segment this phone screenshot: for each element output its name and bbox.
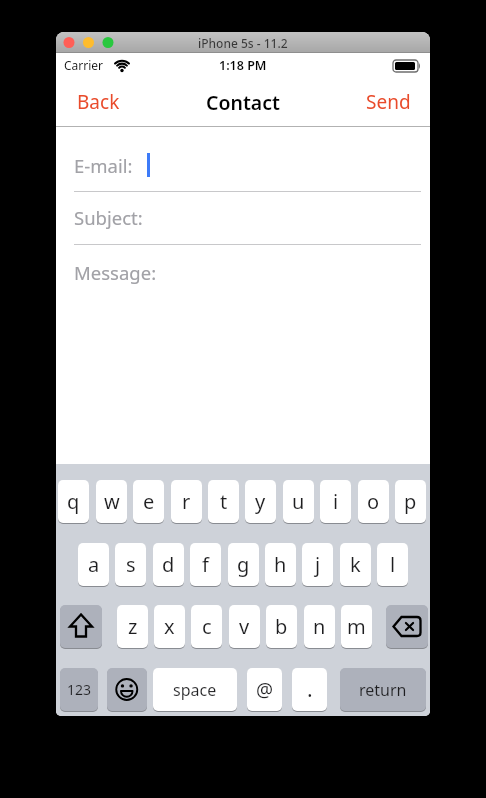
button[interactable]: return	[340, 668, 426, 711]
staticText: .	[307, 675, 313, 704]
button[interactable]: Send	[360, 85, 416, 119]
staticText: y	[255, 488, 266, 515]
button[interactable]	[60, 605, 102, 648]
staticText: E-mail:	[74, 153, 133, 178]
button[interactable]: o	[358, 480, 389, 523]
staticText: d	[162, 551, 175, 578]
staticText: q	[67, 488, 80, 515]
button[interactable]: u	[283, 480, 314, 523]
staticText: c	[202, 613, 212, 640]
button[interactable]: 123	[60, 668, 98, 711]
staticText: x	[164, 613, 175, 640]
button[interactable]: t	[208, 480, 239, 523]
staticText: f	[202, 551, 209, 578]
button[interactable]: d	[153, 543, 184, 586]
button[interactable]: r	[171, 480, 202, 523]
button[interactable]: i	[320, 480, 351, 523]
staticText: return	[359, 679, 407, 701]
staticText: l	[390, 551, 396, 578]
staticText: s	[126, 551, 136, 578]
staticText: m	[347, 613, 366, 640]
staticText: v	[239, 613, 250, 640]
staticText: 1:18 PM	[219, 57, 267, 74]
staticText: t	[220, 488, 228, 515]
staticText: @	[256, 677, 274, 703]
button[interactable]: w	[96, 480, 127, 523]
button[interactable]: v	[229, 605, 260, 648]
button[interactable]: z	[117, 605, 148, 648]
button[interactable]: j	[302, 543, 333, 586]
staticText: iPhone 5s - 11.2	[198, 35, 288, 51]
button[interactable]: f	[190, 543, 221, 586]
staticText: r	[182, 488, 191, 515]
staticText: u	[292, 488, 305, 515]
staticText: Contact	[206, 89, 280, 116]
staticText: n	[313, 613, 326, 640]
staticText: 123	[67, 680, 92, 699]
button[interactable]: @	[247, 668, 282, 711]
button[interactable]: k	[340, 543, 371, 586]
button[interactable]: m	[341, 605, 372, 648]
button[interactable]: h	[265, 543, 296, 586]
button[interactable]	[386, 605, 428, 648]
button[interactable]: Back	[70, 85, 126, 119]
button[interactable]: space	[153, 668, 237, 711]
button[interactable]	[107, 668, 147, 711]
button[interactable]: q	[58, 480, 89, 523]
button[interactable]: x	[154, 605, 185, 648]
button[interactable]: Message:	[74, 259, 421, 285]
staticText: h	[274, 551, 287, 578]
staticText: e	[143, 488, 155, 515]
staticText: w	[104, 488, 120, 515]
staticText: z	[128, 613, 138, 640]
staticText: k	[350, 551, 361, 578]
button[interactable]: b	[266, 605, 297, 648]
staticText: a	[88, 551, 100, 578]
button[interactable]: p	[395, 480, 426, 523]
button[interactable]: y	[245, 480, 276, 523]
staticText: p	[404, 488, 417, 515]
button[interactable]: Subject:	[74, 191, 421, 244]
staticText: i	[333, 488, 339, 515]
staticText: Back	[77, 89, 120, 115]
staticText: g	[237, 551, 250, 578]
button[interactable]: l	[377, 543, 408, 586]
staticText: Subject:	[74, 205, 143, 230]
button[interactable]: c	[191, 605, 222, 648]
staticText: b	[275, 613, 288, 640]
button[interactable]: a	[78, 543, 109, 586]
staticText: Carrier	[64, 57, 104, 73]
button[interactable]: g	[228, 543, 259, 586]
button[interactable]: e	[133, 480, 164, 523]
button[interactable]: s	[115, 543, 146, 586]
staticText: j	[315, 551, 321, 578]
button[interactable]: n	[304, 605, 335, 648]
staticText: Send	[366, 89, 411, 115]
staticText: Message:	[74, 260, 157, 285]
button[interactable]: E-mail:	[74, 139, 421, 191]
staticText: o	[367, 488, 380, 515]
button[interactable]: .	[292, 668, 327, 711]
staticText: space	[173, 679, 217, 701]
